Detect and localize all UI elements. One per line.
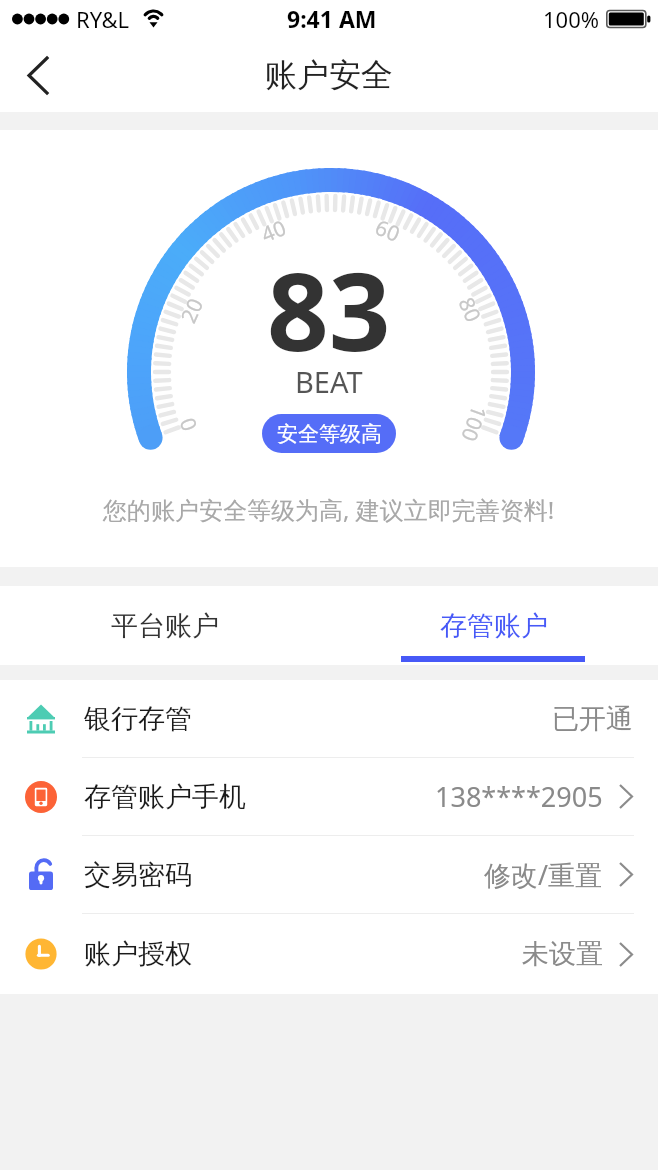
button[interactable]: 交易密码 (0, 836, 658, 913)
staticText: 已开通 (552, 702, 633, 736)
button[interactable]: Back (8, 45, 68, 105)
staticText: 账户安全 (265, 55, 393, 95)
staticText: 账户授权 (84, 937, 192, 971)
staticText: 交易密码 (84, 858, 192, 892)
staticText: 平台账户 (111, 609, 219, 643)
button[interactable]: 安全等级高 (262, 414, 396, 453)
staticText: 9:41 AM (287, 3, 377, 34)
staticText: 银行存管 (84, 702, 192, 736)
button[interactable]: 账户授权 (0, 914, 658, 994)
staticText: 您的账户安全等级为高, 建议立即完善资料! (103, 493, 555, 526)
staticText: 存管账户 (440, 609, 548, 643)
staticText: 修改/重置 (484, 856, 603, 893)
button[interactable]: 存管账户 (329, 586, 658, 665)
staticText: BEAT (295, 362, 363, 401)
staticText: 83 (267, 236, 391, 383)
button[interactable]: 存管账户手机 (0, 758, 658, 835)
staticText: 存管账户手机 (84, 780, 246, 814)
button[interactable]: 平台账户 (0, 586, 329, 665)
staticText: RY&L (76, 4, 130, 34)
staticText: 100% (543, 4, 600, 34)
staticText: 138****2905 (435, 778, 603, 815)
button[interactable]: 银行存管 (0, 680, 658, 757)
staticText: 安全等级高 (277, 421, 382, 447)
staticText: 未设置 (522, 937, 603, 971)
